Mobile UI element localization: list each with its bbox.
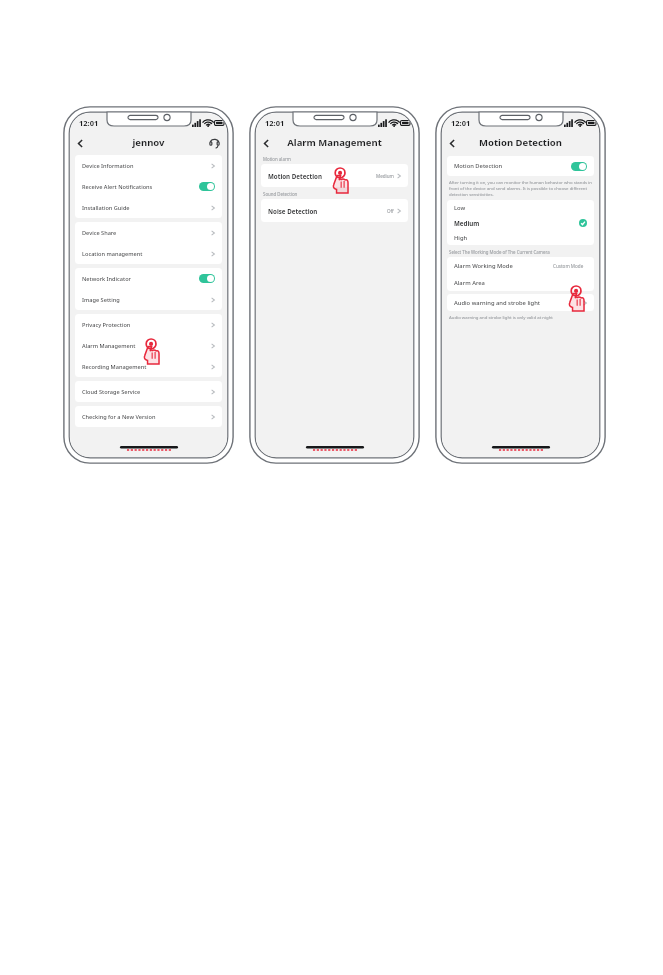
staticText: Alarm Management (287, 136, 382, 149)
button[interactable]: Alarm Management (75, 335, 222, 356)
staticText: After turning it on, you can monitor the… (449, 179, 592, 197)
button[interactable]: Privacy Protection (75, 314, 222, 335)
staticText: 12:01 (265, 118, 285, 128)
staticText: Sound Detection (263, 191, 298, 197)
staticText: jennov (132, 136, 165, 149)
button[interactable]: Receive Alert Notifications (75, 176, 222, 197)
button[interactable]: Back (256, 133, 276, 153)
staticText: Noise Detection (268, 207, 318, 215)
button[interactable]: Toggle (199, 182, 215, 191)
button[interactable]: Toggle (199, 274, 215, 283)
button[interactable]: Support (205, 134, 223, 152)
button[interactable]: Alarm Working Mode (447, 257, 594, 274)
staticText: Select The Working Mode of The Current C… (449, 249, 550, 255)
staticText: Alarm Management (82, 342, 136, 350)
staticText: Motion Detection (479, 136, 562, 149)
staticText: Receive Alert Notifications (82, 183, 153, 191)
staticText: Location management (82, 250, 143, 258)
staticText: Image Setting (82, 296, 120, 304)
button[interactable]: Checking for a New Version (75, 406, 222, 427)
button[interactable]: Device Share (75, 222, 222, 243)
button[interactable]: Back (442, 133, 462, 153)
staticText: Audio warning and strobe light (454, 299, 540, 307)
button[interactable]: Toggle (571, 162, 587, 171)
button[interactable]: High (447, 230, 594, 245)
button[interactable]: Low (447, 200, 594, 215)
button[interactable]: Audio warning and strobe light (447, 294, 594, 311)
staticText: Recording Management (82, 363, 147, 371)
staticText: Installation Guide (82, 204, 130, 212)
staticText: Privacy Protection (82, 321, 131, 329)
staticText: Alarm Area (454, 279, 485, 287)
staticText: Alarm Working Mode (454, 262, 513, 270)
button[interactable]: Motion Detection (261, 164, 408, 187)
staticText: Audio warning and strobe light is only v… (449, 314, 553, 320)
staticText: Checking for a New Version (82, 413, 156, 421)
staticText: Device Information (82, 162, 134, 170)
staticText: Off (387, 208, 394, 214)
staticText: Motion alarm (263, 156, 291, 162)
staticText: Motion Detection (454, 162, 503, 170)
button[interactable]: Cloud Storage Service (75, 381, 222, 402)
button[interactable]: Motion Detection (447, 156, 594, 176)
staticText: Device Share (82, 229, 117, 237)
staticText: Medium (454, 219, 480, 227)
button[interactable]: Alarm Area (447, 274, 594, 291)
staticText: Network Indicator (82, 275, 131, 283)
staticText: Cloud Storage Service (82, 388, 141, 396)
button[interactable]: Back (70, 133, 90, 153)
staticText: Low (454, 204, 466, 212)
staticText: 12:01 (79, 118, 99, 128)
button[interactable]: Recording Management (75, 356, 222, 377)
button[interactable]: Medium (447, 215, 594, 230)
staticText: Custom Mode (553, 263, 584, 269)
button[interactable]: Location management (75, 243, 222, 264)
button[interactable]: Network Indicator (75, 268, 222, 289)
staticText: Medium (376, 173, 394, 179)
button[interactable]: Device Information (75, 155, 222, 176)
button[interactable]: Installation Guide (75, 197, 222, 218)
staticText: Motion Detection (268, 172, 322, 180)
button[interactable]: Noise Detection (261, 199, 408, 222)
staticText: 12:01 (451, 118, 471, 128)
button[interactable]: Image Setting (75, 289, 222, 310)
staticText: High (454, 234, 468, 242)
